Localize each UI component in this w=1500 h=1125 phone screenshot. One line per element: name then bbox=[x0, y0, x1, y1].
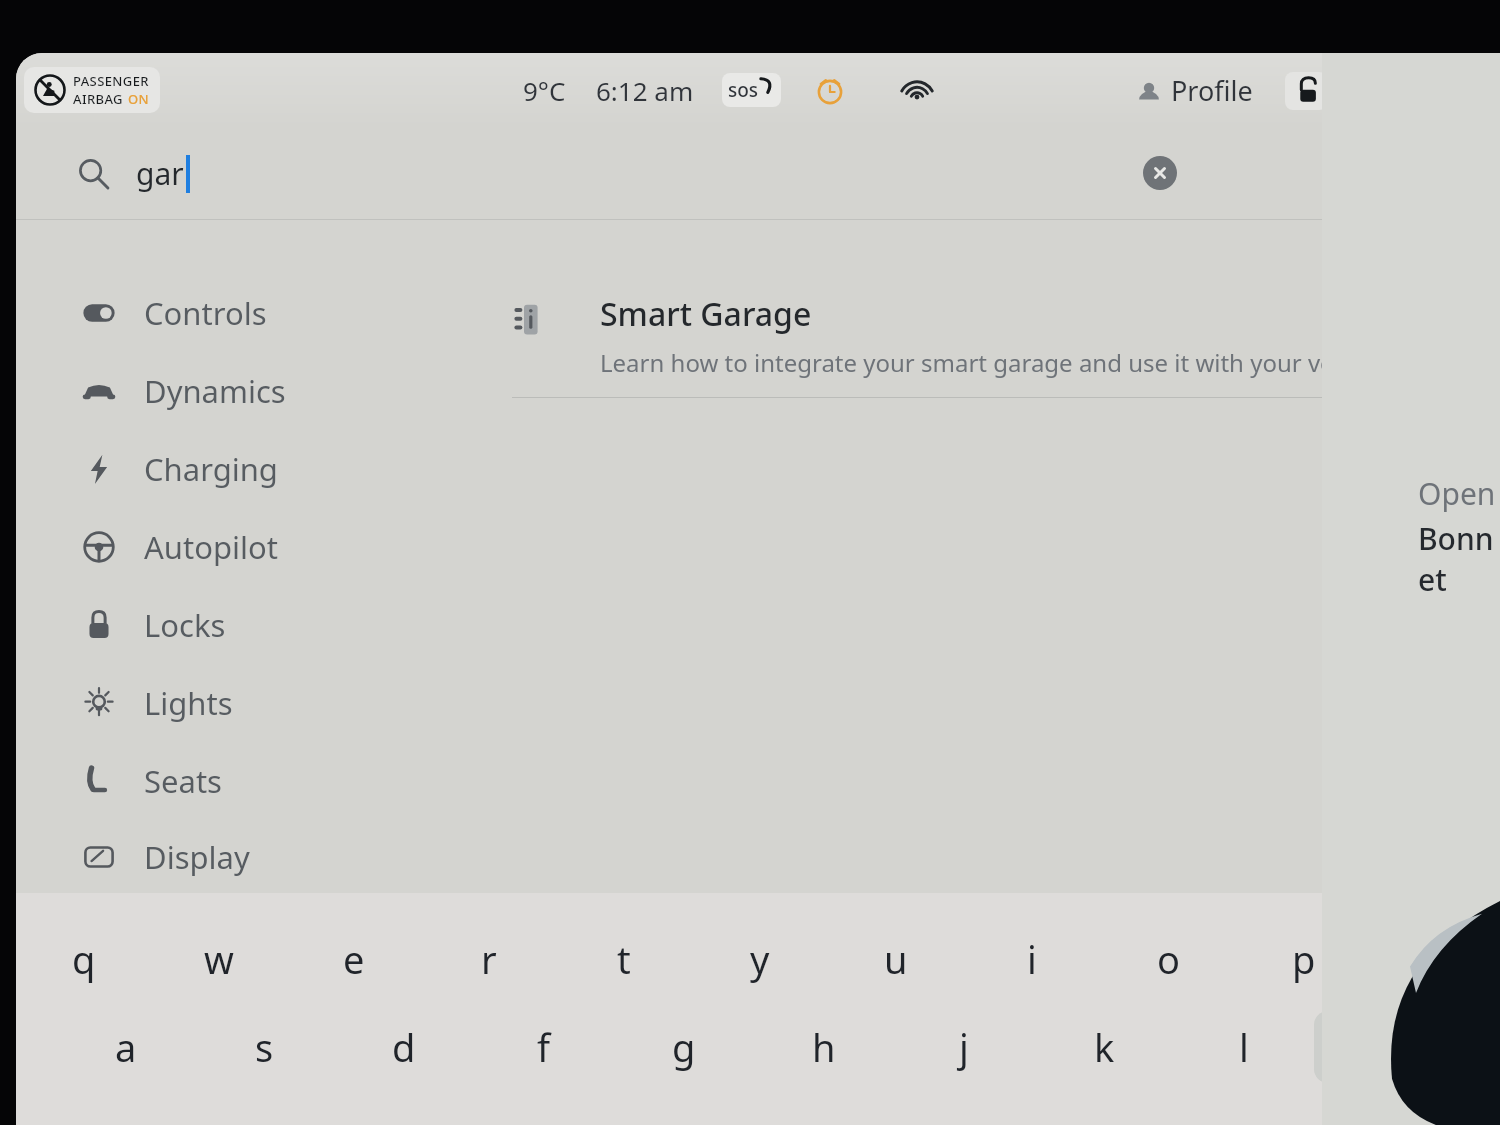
staticText: AIRBAG bbox=[73, 90, 123, 108]
button[interactable]: Wi-Fi bbox=[897, 74, 937, 106]
button[interactable]: Controls bbox=[16, 274, 436, 352]
button[interactable]: e bbox=[286, 919, 421, 999]
staticText: 6:12 am bbox=[596, 73, 694, 108]
button[interactable]: PASSENGER bbox=[24, 67, 160, 113]
button[interactable]: Backspace bbox=[1372, 923, 1500, 995]
staticText: Dynamics bbox=[144, 370, 286, 412]
button[interactable]: j bbox=[894, 1007, 1034, 1087]
button[interactable]: gar bbox=[16, 127, 1500, 219]
staticText: Autopilot bbox=[144, 526, 278, 568]
staticText: Seats bbox=[144, 760, 222, 802]
staticText: PASSENGER bbox=[73, 72, 149, 90]
button[interactable]: d bbox=[334, 1007, 474, 1087]
button[interactable]: Autopilot bbox=[16, 508, 436, 586]
button[interactable]: p bbox=[1236, 919, 1372, 999]
button[interactable]: Lights bbox=[16, 664, 436, 742]
staticText: k bbox=[1094, 1021, 1115, 1073]
staticText: Smart Garage bbox=[600, 292, 812, 336]
button[interactable]: q bbox=[16, 919, 151, 999]
button[interactable]: h bbox=[754, 1007, 894, 1087]
staticText: Locks bbox=[144, 604, 226, 646]
staticText: a bbox=[115, 1021, 137, 1073]
staticText: y bbox=[750, 933, 770, 985]
staticText: p bbox=[1292, 933, 1316, 985]
button[interactable]: g bbox=[614, 1007, 754, 1087]
button[interactable]: k bbox=[1034, 1007, 1174, 1087]
staticText: j bbox=[959, 1021, 969, 1073]
staticText: Profile bbox=[1171, 72, 1253, 109]
button[interactable]: Clear search bbox=[1143, 156, 1177, 190]
button[interactable]: Display bbox=[16, 820, 436, 893]
button[interactable]: r bbox=[421, 919, 556, 999]
staticText: u bbox=[884, 933, 908, 985]
button[interactable]: Locks bbox=[16, 586, 436, 664]
staticText: e bbox=[343, 933, 365, 985]
staticText: Enter bbox=[1374, 1030, 1441, 1065]
button[interactable]: Alarm bbox=[811, 71, 849, 109]
staticText: ON bbox=[128, 90, 150, 108]
button[interactable]: Dynamics bbox=[16, 352, 436, 430]
staticText: h bbox=[812, 1021, 836, 1073]
button[interactable]: Charging bbox=[16, 430, 436, 508]
button[interactable]: Seats bbox=[16, 742, 436, 820]
staticText: g bbox=[672, 1021, 696, 1073]
button[interactable]: y bbox=[692, 919, 828, 999]
staticText: Controls bbox=[144, 292, 267, 334]
staticText: Learn how to integrate your smart garage… bbox=[600, 346, 1393, 379]
staticText: Display bbox=[144, 836, 250, 878]
button[interactable]: SOS emergency bbox=[722, 73, 781, 107]
button[interactable]: a bbox=[56, 1007, 195, 1087]
staticText: 9°C bbox=[523, 73, 566, 108]
button[interactable]: u bbox=[828, 919, 964, 999]
button[interactable]: s bbox=[195, 1007, 334, 1087]
button[interactable]: Profile bbox=[1130, 68, 1259, 113]
button[interactable]: Smart Garage bbox=[436, 282, 1500, 397]
button[interactable]: t bbox=[556, 919, 692, 999]
staticText: d bbox=[392, 1021, 416, 1073]
button[interactable]: w bbox=[151, 919, 286, 999]
button[interactable]: i bbox=[964, 919, 1100, 999]
staticText: w bbox=[204, 933, 234, 985]
staticText: Charging bbox=[144, 448, 278, 490]
staticText: o bbox=[1157, 933, 1180, 985]
button[interactable]: Unlocked bbox=[1285, 72, 1327, 110]
button[interactable]: f bbox=[474, 1007, 614, 1087]
staticText: s bbox=[255, 1021, 274, 1073]
staticText: Open bbox=[1418, 473, 1496, 514]
button[interactable]: o bbox=[1100, 919, 1236, 999]
staticText: r bbox=[481, 933, 497, 985]
staticText: Lights bbox=[144, 682, 233, 724]
staticText: t bbox=[617, 933, 631, 985]
button[interactable]: l bbox=[1174, 1007, 1314, 1087]
staticText: i bbox=[1027, 933, 1037, 985]
staticText: l bbox=[1239, 1021, 1249, 1073]
staticText: Bonnet bbox=[1418, 518, 1500, 600]
staticText: f bbox=[537, 1021, 551, 1073]
staticText: q bbox=[72, 933, 96, 985]
staticText: sos bbox=[728, 77, 759, 103]
staticText: gar bbox=[136, 153, 184, 194]
button[interactable]: Enter bbox=[1314, 1011, 1500, 1083]
